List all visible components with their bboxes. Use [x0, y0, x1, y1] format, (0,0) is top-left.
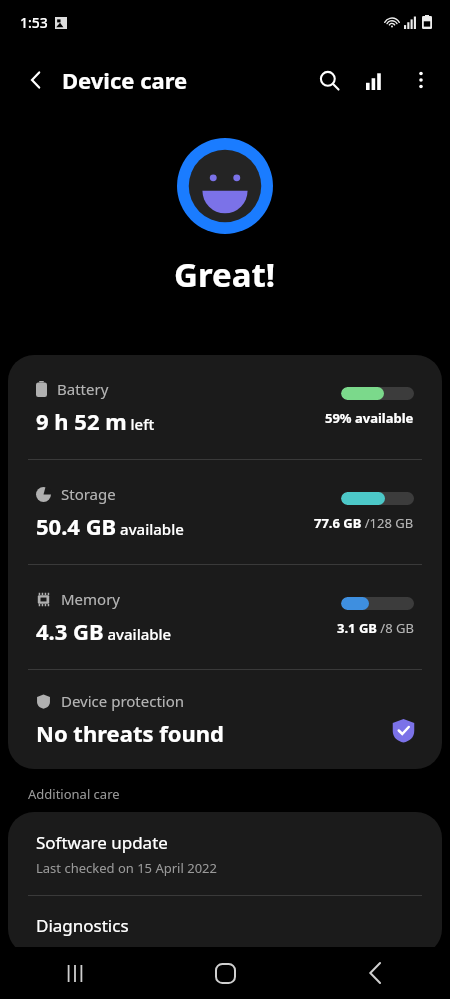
staticText: Device care — [62, 65, 188, 95]
button[interactable]: Memory — [8, 565, 442, 669]
button[interactable]: Home — [150, 947, 300, 999]
button[interactable]: Back — [14, 58, 58, 102]
button[interactable]: More options — [398, 57, 444, 103]
staticText: Additional care — [28, 785, 120, 803]
staticText: Storage — [61, 484, 116, 504]
button[interactable]: Device protection — [8, 670, 442, 769]
staticText: Software update — [36, 831, 168, 854]
staticText: Diagnostics — [36, 914, 129, 937]
staticText: Battery — [57, 379, 109, 399]
staticText: 77.6 GB /128 GB — [314, 514, 414, 532]
staticText: Memory — [61, 589, 121, 609]
staticText: No threats found — [36, 718, 224, 748]
staticText: 9 h 52 m left — [36, 406, 155, 436]
button[interactable]: Battery — [8, 355, 442, 459]
button[interactable]: Diagnostics — [8, 896, 442, 955]
staticText: Device protection — [61, 691, 185, 711]
button[interactable]: Storage — [8, 460, 442, 564]
staticText: 59% available — [325, 409, 414, 427]
staticText: 3.1 GB /8 GB — [337, 619, 414, 637]
button[interactable]: Usage statistics — [352, 57, 398, 103]
button[interactable]: Software update — [8, 812, 442, 895]
staticText: 4.3 GB available — [36, 616, 172, 646]
button[interactable]: Search — [306, 57, 352, 103]
button[interactable]: Recent apps — [0, 947, 150, 999]
button[interactable]: Back — [300, 947, 450, 999]
staticText: 50.4 GB available — [36, 511, 184, 541]
staticText: Great! — [174, 252, 276, 297]
staticText: Last checked on 15 April 2022 — [36, 859, 217, 877]
staticText: 1:53 — [20, 13, 48, 32]
